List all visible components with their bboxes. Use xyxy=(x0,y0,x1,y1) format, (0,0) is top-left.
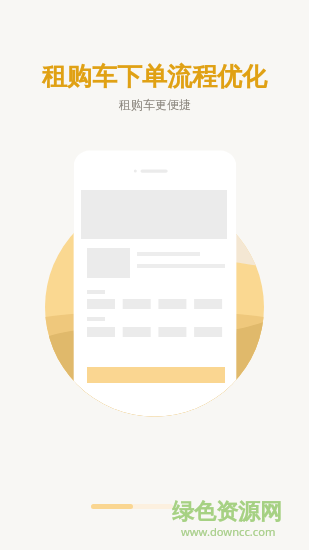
staticText: www.downcc.com xyxy=(181,524,276,539)
staticText: 租购车下单流程优化 xyxy=(42,61,267,92)
staticText: 绿色资源网 xyxy=(172,498,282,526)
button[interactable]: Page indicator xyxy=(91,504,173,509)
staticText: 租购车更便捷 xyxy=(119,97,191,112)
